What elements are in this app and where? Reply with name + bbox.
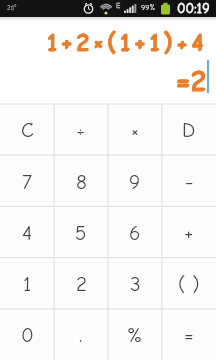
staticText: =2: [176, 64, 207, 97]
staticText: =2: [177, 64, 208, 97]
staticText: -: [185, 170, 194, 194]
button[interactable]: C: [0, 104, 54, 156]
staticText: =2: [176, 65, 207, 98]
button[interactable]: 8: [54, 156, 108, 207]
staticText: .: [79, 323, 83, 347]
staticText: 4: [22, 221, 33, 245]
staticText: ( ): [178, 272, 200, 296]
button[interactable]: 2: [54, 258, 108, 309]
staticText: +: [184, 221, 194, 245]
staticText: 26°: [7, 4, 17, 12]
button[interactable]: -: [162, 156, 216, 207]
staticText: ÷: [76, 118, 86, 142]
button[interactable]: 0: [0, 309, 54, 360]
button[interactable]: 6: [108, 207, 162, 258]
button[interactable]: 4: [0, 207, 54, 258]
staticText: 7: [22, 170, 32, 194]
staticText: 1+2×(1+1)÷4: [48, 28, 209, 56]
staticText: 1+2×(1+1)÷4: [47, 29, 208, 57]
button[interactable]: D: [162, 104, 216, 156]
staticText: %: [127, 323, 143, 347]
button[interactable]: 9: [108, 156, 162, 207]
staticText: 6: [129, 221, 141, 245]
button[interactable]: .: [54, 309, 108, 360]
staticText: 3: [130, 272, 141, 296]
button[interactable]: 1: [0, 258, 54, 309]
button[interactable]: +: [162, 207, 216, 258]
button[interactable]: ( ): [162, 258, 216, 309]
staticText: 5: [75, 221, 87, 245]
button[interactable]: 5: [54, 207, 108, 258]
staticText: C: [21, 118, 34, 142]
staticText: 1+2×(1+1)÷4: [47, 28, 208, 56]
staticText: 99%: [141, 3, 156, 12]
staticText: 9: [129, 170, 141, 194]
staticText: E: [116, 2, 121, 10]
button[interactable]: %: [108, 309, 162, 360]
button[interactable]: 3: [108, 258, 162, 309]
staticText: 1: [23, 272, 32, 296]
staticText: ×: [131, 118, 139, 142]
staticText: 00:19: [177, 0, 210, 16]
staticText: 8: [76, 170, 87, 194]
staticText: =: [184, 323, 194, 347]
staticText: 2: [76, 272, 87, 296]
button[interactable]: =: [162, 309, 216, 360]
button[interactable]: ÷: [54, 104, 108, 156]
button[interactable]: ×: [108, 104, 162, 156]
staticText: D: [182, 118, 196, 142]
staticText: 0: [21, 323, 34, 347]
button[interactable]: 7: [0, 156, 54, 207]
